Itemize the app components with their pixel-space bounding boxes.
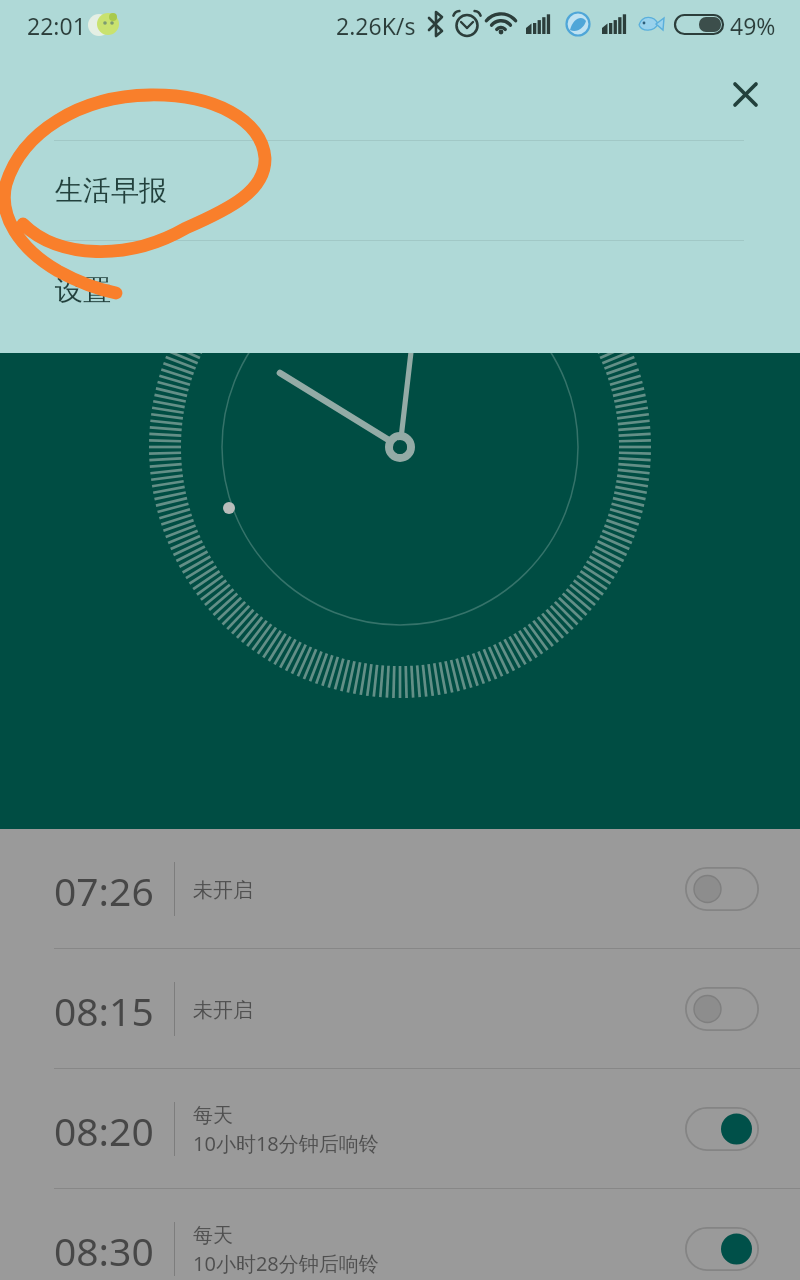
- button[interactable]: Alarm off: [685, 987, 759, 1031]
- button[interactable]: Alarm off: [685, 867, 759, 911]
- staticText: 10小时18分钟后响铃: [193, 1130, 379, 1157]
- staticText: 2.26K/s: [336, 10, 416, 41]
- button[interactable]: Close: [717, 66, 774, 123]
- staticText: 22:01: [27, 10, 86, 41]
- staticText: 每天: [193, 1223, 233, 1248]
- button[interactable]: 07:26: [0, 829, 800, 949]
- staticText: 生活早报: [55, 173, 167, 208]
- button[interactable]: Alarm on: [685, 1107, 759, 1151]
- button[interactable]: 生活早报: [0, 141, 800, 240]
- staticText: 设置: [55, 273, 111, 308]
- staticText: 08:15: [54, 984, 154, 1037]
- button[interactable]: 设置: [0, 241, 800, 340]
- staticText: 08:20: [54, 1104, 154, 1157]
- staticText: 未开启: [193, 998, 253, 1023]
- staticText: 10小时28分钟后响铃: [193, 1250, 379, 1277]
- staticText: 49%: [730, 10, 776, 41]
- staticText: 07:26: [54, 864, 154, 917]
- button[interactable]: 08:15: [0, 949, 800, 1069]
- staticText: 每天: [193, 1103, 233, 1128]
- button[interactable]: Alarm on: [685, 1227, 759, 1271]
- button[interactable]: 08:20: [0, 1069, 800, 1189]
- staticText: 未开启: [193, 878, 253, 903]
- button[interactable]: 08:30: [0, 1189, 800, 1280]
- staticText: 08:30: [54, 1224, 154, 1277]
